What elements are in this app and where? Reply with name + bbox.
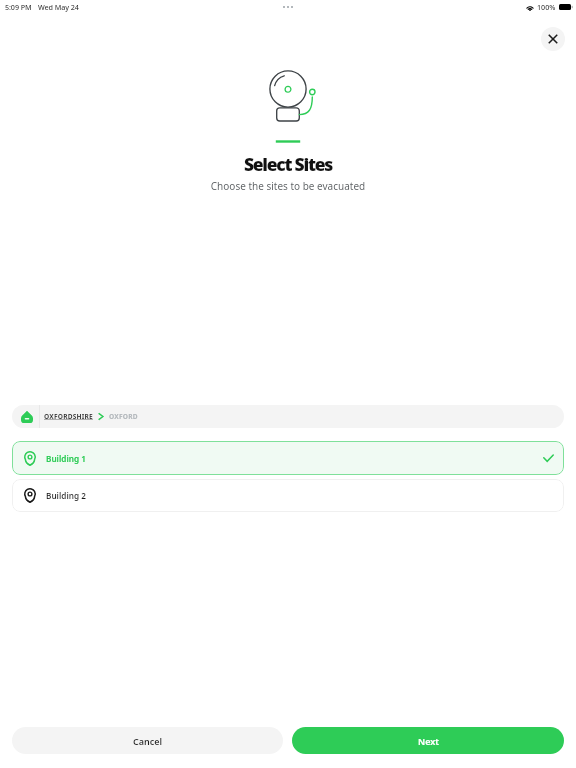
staticText: 100% (537, 2, 556, 12)
staticText: Cancel (133, 735, 163, 747)
staticText: OXFORD (109, 412, 138, 421)
staticText: Wed May 24 (38, 2, 79, 12)
button[interactable]: Cancel (12, 727, 283, 754)
button[interactable]: Building 2 (12, 479, 564, 512)
staticText: Building 1 (46, 453, 86, 464)
staticText: OXFORDSHIRE (44, 412, 93, 421)
staticText: Choose the sites to be evacuated (0, 179, 576, 193)
staticText: Building 2 (46, 490, 86, 501)
staticText: Select Sites (0, 152, 576, 176)
staticText: Next (418, 735, 439, 747)
button[interactable]: Close (541, 27, 565, 51)
button[interactable]: Next (292, 727, 564, 754)
staticText: 5:09 PM (5, 2, 32, 12)
button[interactable]: OXFORDSHIRE (12, 405, 564, 428)
button[interactable]: Building 1 (12, 441, 564, 475)
